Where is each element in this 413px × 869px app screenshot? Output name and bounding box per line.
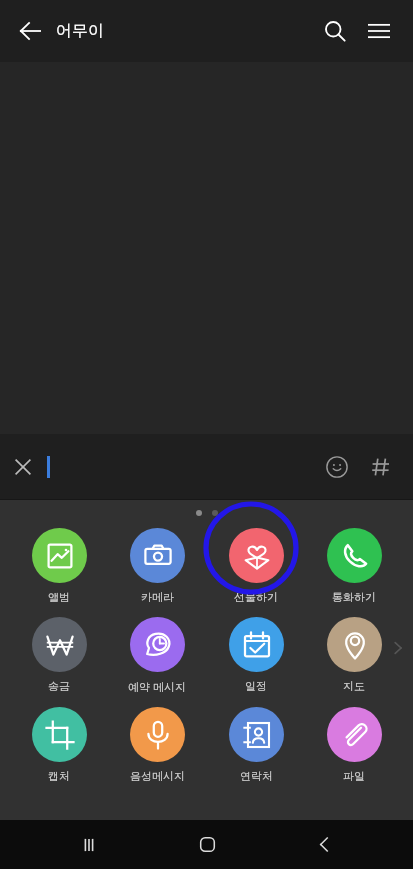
button[interactable] xyxy=(44,434,315,500)
staticText: 일정 xyxy=(245,679,267,693)
button[interactable]: 지도 xyxy=(308,617,400,693)
staticText: 예약 메시지 xyxy=(128,679,186,694)
button[interactable]: 앨범 xyxy=(13,528,105,604)
staticText: 앨범 xyxy=(48,590,70,604)
staticText: 음성메시지 xyxy=(130,769,185,783)
button[interactable]: 연락처 xyxy=(210,707,302,783)
staticText: 지도 xyxy=(343,679,365,693)
staticText: 캡처 xyxy=(48,769,70,783)
button[interactable]: 파일 xyxy=(308,707,400,783)
button[interactable]: 통화하기 xyxy=(308,528,400,604)
staticText: 선물하기 xyxy=(234,590,278,604)
staticText: 파일 xyxy=(343,769,365,783)
button[interactable]: 카메라 xyxy=(111,528,203,604)
button[interactable]: Hashtag xyxy=(359,445,403,489)
button[interactable]: Recent apps xyxy=(61,820,117,869)
button[interactable]: 송금 xyxy=(13,617,105,693)
button[interactable]: 예약 메시지 xyxy=(111,617,203,694)
button[interactable]: Back xyxy=(8,9,52,53)
staticText: 통화하기 xyxy=(332,590,376,604)
button[interactable]: 음성메시지 xyxy=(111,707,203,783)
staticText: 어무이 xyxy=(56,21,104,41)
button[interactable]: Home xyxy=(179,820,235,869)
button[interactable]: 캡처 xyxy=(13,707,105,783)
button[interactable]: Emoji xyxy=(315,445,359,489)
staticText: 연락처 xyxy=(240,769,273,783)
staticText: 송금 xyxy=(48,679,70,693)
button[interactable]: Menu xyxy=(357,9,401,53)
button[interactable]: Close attachments xyxy=(2,446,44,488)
staticText: 카메라 xyxy=(141,590,174,604)
button[interactable]: Search xyxy=(313,9,357,53)
button[interactable]: Back xyxy=(296,820,352,869)
button[interactable]: 일정 xyxy=(210,617,302,693)
button[interactable]: 선물하기 xyxy=(210,528,302,604)
